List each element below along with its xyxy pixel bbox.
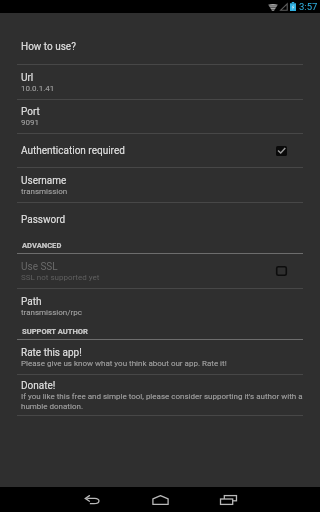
staticText: SSL not supported yet	[21, 273, 100, 282]
staticText: 9091	[21, 118, 39, 127]
button[interactable]: Authentication required	[0, 134, 320, 167]
button[interactable]: Back	[81, 487, 103, 512]
button[interactable]: Port	[0, 100, 320, 133]
staticText: Password	[21, 214, 66, 226]
staticText: SUPPORT AUTHOR	[22, 327, 88, 336]
staticText: Username	[21, 175, 67, 187]
button[interactable]: Use SSL	[0, 254, 320, 288]
staticText: How to use?	[21, 41, 76, 53]
button[interactable]: Donate!	[0, 375, 320, 415]
button[interactable]: Rate this app!	[0, 340, 320, 374]
button[interactable]: Unchecked	[270, 260, 292, 282]
staticText: Use SSL	[21, 261, 58, 273]
staticText: Please give us know what you think about…	[21, 359, 227, 368]
button[interactable]: Path	[0, 289, 320, 323]
staticText: Url	[21, 72, 34, 84]
button[interactable]: Username	[0, 168, 320, 202]
staticText: Authentication required	[21, 145, 125, 157]
staticText: Port	[21, 106, 40, 118]
button[interactable]: Recent apps	[217, 487, 239, 512]
staticText: If you like this free and simple tool, p…	[21, 392, 303, 410]
button[interactable]: Url	[0, 65, 320, 99]
staticText: 10.0.1.41	[21, 84, 55, 93]
button[interactable]: Checked	[270, 140, 292, 162]
staticText: ADVANCED	[22, 241, 62, 250]
button[interactable]: Home	[149, 487, 171, 512]
staticText: Donate!	[21, 380, 56, 392]
staticText: transmission/rpc	[21, 308, 82, 317]
staticText: Rate this app!	[21, 347, 82, 359]
staticText: transmission	[21, 187, 68, 196]
button[interactable]: Password	[0, 203, 320, 237]
button[interactable]: How to use?	[0, 30, 320, 64]
staticText: Path	[21, 296, 42, 308]
staticText: 3:57	[299, 1, 318, 12]
